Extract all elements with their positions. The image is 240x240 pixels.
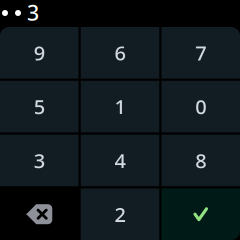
staticText: 3 [27,0,39,27]
staticText: 3 [34,147,45,174]
staticText: 1 [114,93,125,120]
button[interactable]: 0 [161,81,240,132]
staticText: 9 [34,39,45,66]
button[interactable]: 6 [81,27,159,79]
staticText: 5 [34,93,45,120]
staticText: 4 [114,147,125,174]
button[interactable]: 5 [0,81,78,132]
staticText: 6 [114,39,125,66]
button[interactable]: Delete [0,188,78,240]
button[interactable]: 2 [81,188,159,240]
button[interactable]: 3 [0,135,78,186]
button[interactable]: 7 [161,27,240,79]
button[interactable]: Confirm [161,188,240,240]
staticText: 2 [114,201,125,227]
button[interactable]: 8 [161,135,240,186]
staticText: 0 [195,93,206,120]
button[interactable]: 9 [0,27,78,79]
staticText: 8 [195,147,206,174]
staticText: 7 [195,39,206,66]
button[interactable]: 4 [81,135,159,186]
button[interactable]: 1 [81,81,159,132]
